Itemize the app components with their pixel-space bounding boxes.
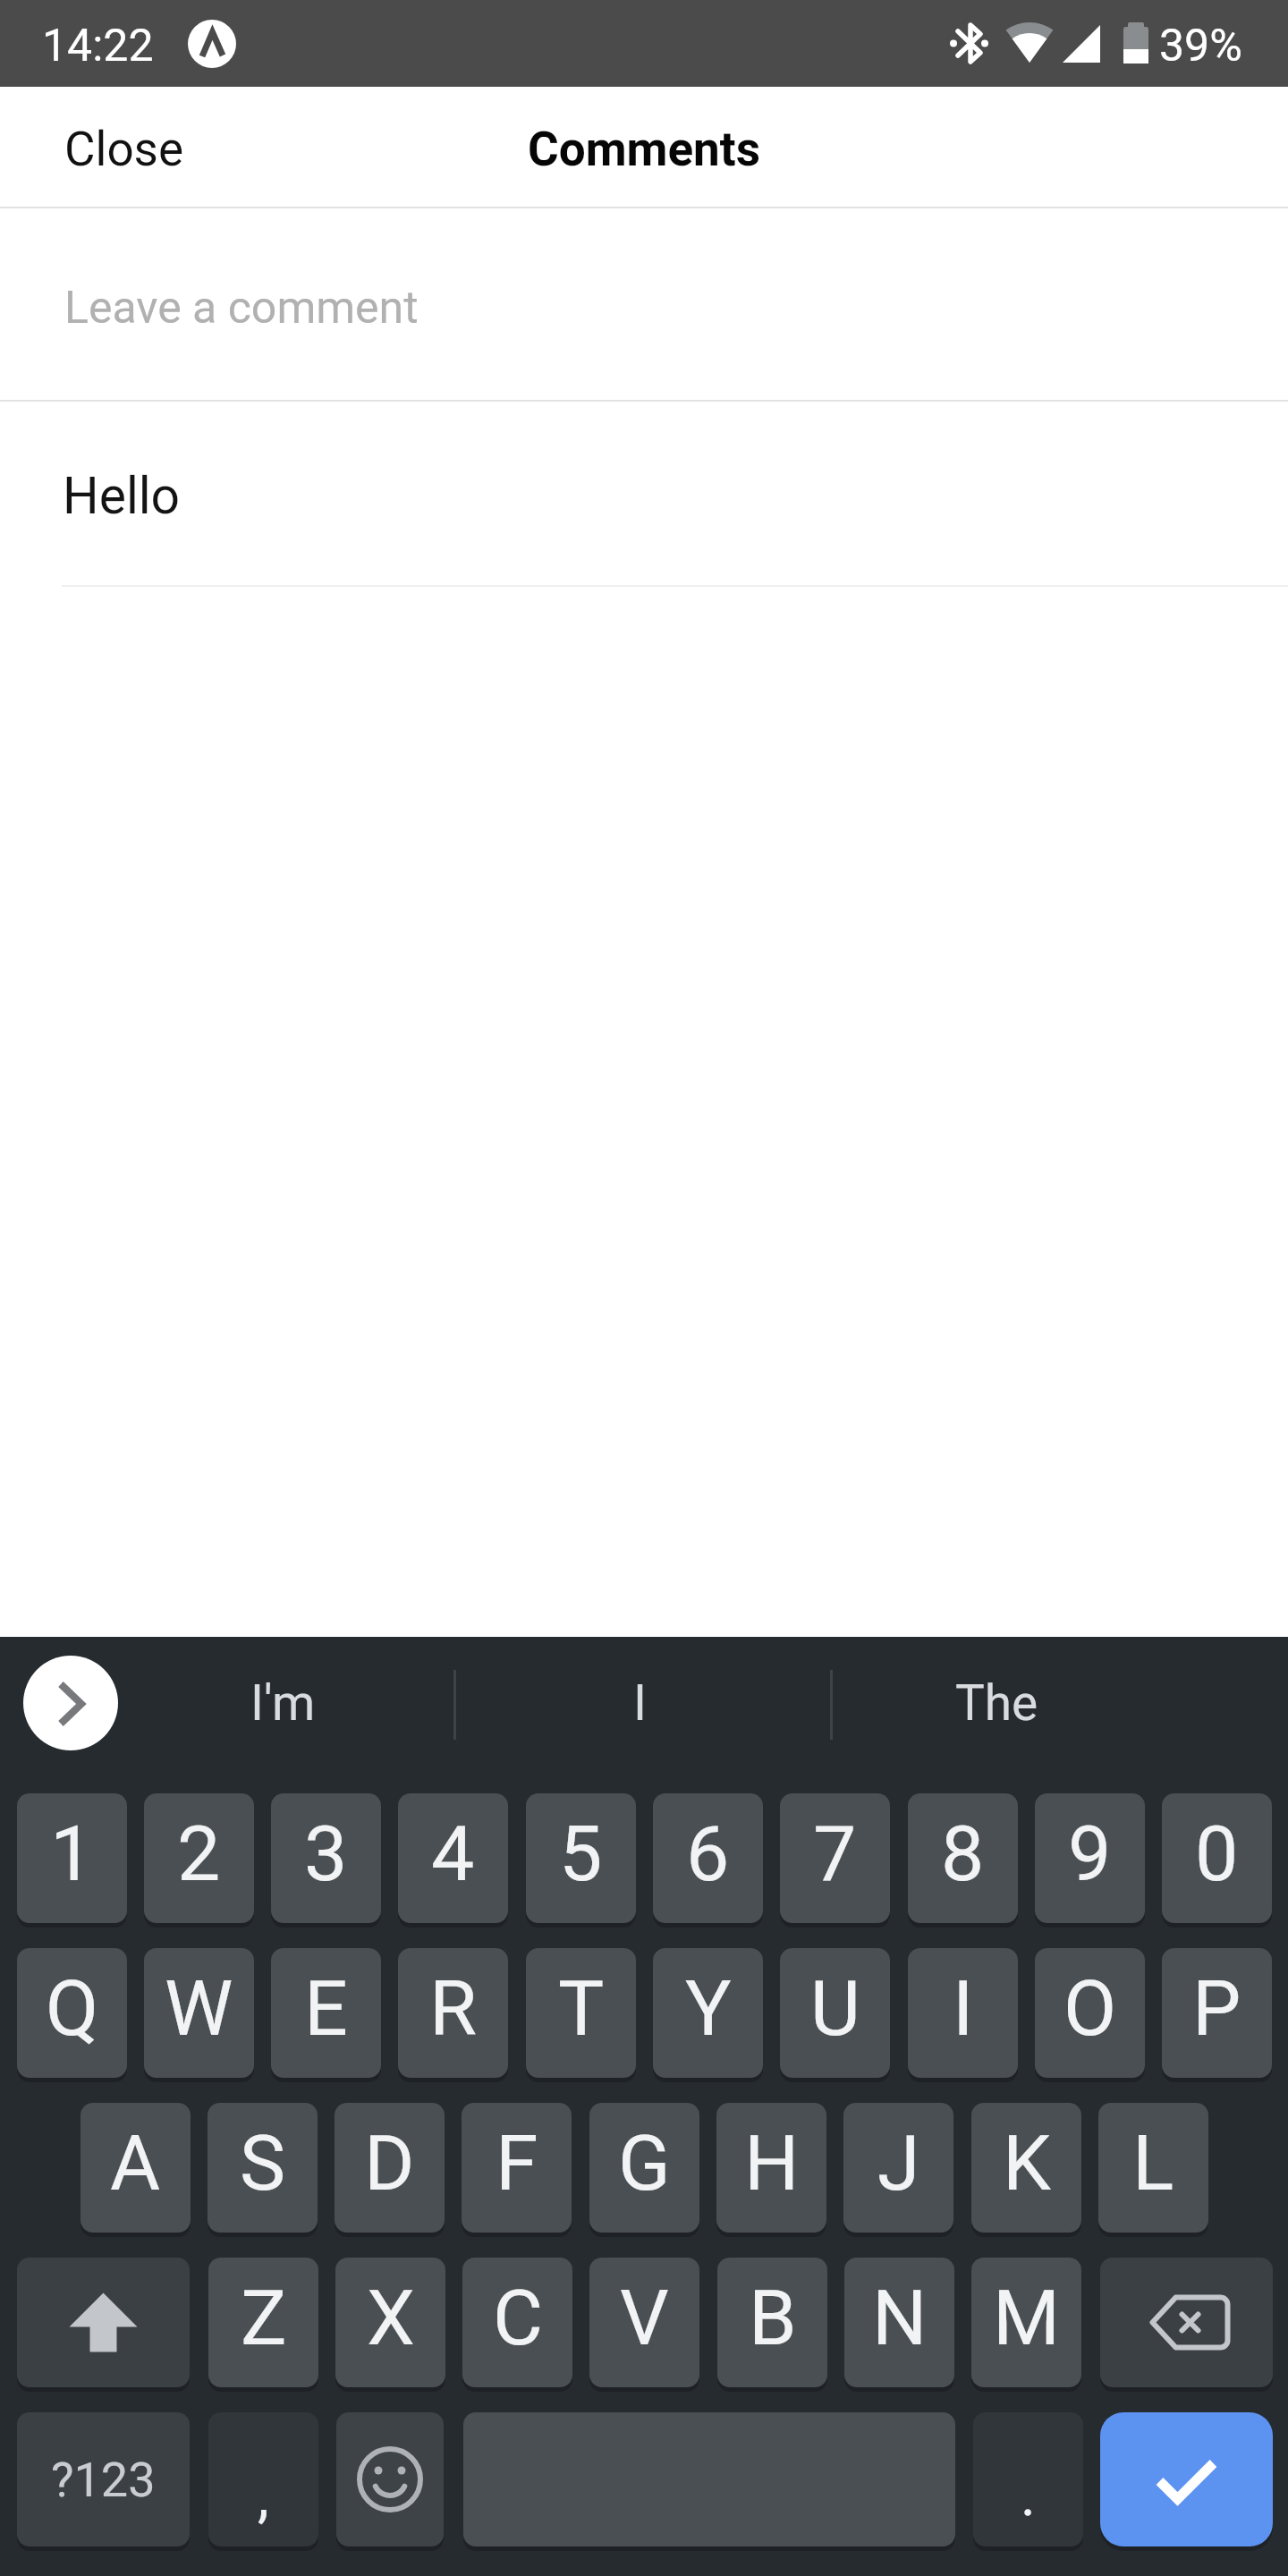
button[interactable]: X <box>335 2258 445 2387</box>
button[interactable]: I <box>908 1948 1018 2078</box>
button[interactable]: Z <box>208 2258 318 2387</box>
button[interactable]: B <box>717 2258 827 2387</box>
button[interactable]: 2 <box>144 1793 254 1923</box>
button[interactable]: Y <box>653 1948 763 2078</box>
button[interactable]: Close <box>0 122 211 177</box>
staticText: Comments <box>528 122 760 177</box>
button[interactable] <box>17 2258 190 2387</box>
staticText: P <box>1192 1963 1241 2054</box>
button[interactable]: . <box>973 2412 1083 2546</box>
staticText: J <box>877 2118 920 2208</box>
staticText: X <box>367 2273 415 2363</box>
button[interactable]: I <box>505 1637 774 1769</box>
staticText: L <box>1132 2118 1174 2208</box>
button[interactable]: P <box>1162 1948 1272 2078</box>
staticText: ?123 <box>51 2452 156 2508</box>
button[interactable]: 4 <box>398 1793 508 1923</box>
staticText: M <box>993 2273 1061 2363</box>
button[interactable]: U <box>780 1948 890 2078</box>
button[interactable]: Q <box>17 1948 127 2078</box>
staticText: I <box>633 1674 647 1732</box>
button[interactable]: F <box>462 2103 572 2233</box>
staticText: 4 <box>431 1809 475 1899</box>
button[interactable] <box>1100 2258 1273 2387</box>
staticText: 9 <box>1068 1809 1112 1899</box>
button[interactable]: 0 <box>1162 1793 1272 1923</box>
staticText: 1 <box>50 1809 94 1899</box>
staticText: C <box>493 2273 543 2363</box>
staticText: 0 <box>1195 1809 1239 1899</box>
button[interactable]: 6 <box>653 1793 763 1923</box>
staticText: Z <box>241 2273 287 2363</box>
staticText: B <box>749 2273 797 2363</box>
button[interactable]: O <box>1035 1948 1145 2078</box>
button[interactable]: 5 <box>526 1793 636 1923</box>
staticText: Y <box>685 1963 732 2054</box>
button[interactable]: H <box>716 2103 826 2233</box>
staticText: H <box>744 2118 800 2208</box>
staticText: 7 <box>813 1809 857 1899</box>
staticText: O <box>1063 1963 1117 2054</box>
button[interactable]: L <box>1098 2103 1208 2233</box>
button[interactable]: C <box>462 2258 572 2387</box>
staticText: E <box>304 1963 348 2054</box>
staticText: The <box>955 1674 1038 1732</box>
button[interactable]: J <box>843 2103 953 2233</box>
staticText: I <box>953 1963 974 2054</box>
button[interactable] <box>336 2412 444 2546</box>
button[interactable]: T <box>526 1948 636 2078</box>
button[interactable]: A <box>80 2103 191 2233</box>
staticText: . <box>1021 2462 1036 2529</box>
button[interactable]: M <box>971 2258 1081 2387</box>
button[interactable]: V <box>589 2258 699 2387</box>
staticText: T <box>558 1963 605 2054</box>
staticText: 14:22 <box>42 20 154 72</box>
staticText: K <box>1003 2118 1051 2208</box>
button[interactable]: N <box>844 2258 954 2387</box>
button[interactable]: G <box>589 2103 699 2233</box>
staticText: A <box>110 2118 161 2208</box>
staticText: R <box>429 1963 477 2054</box>
staticText: 6 <box>686 1809 730 1899</box>
button[interactable]: Leave a comment <box>0 208 1288 400</box>
staticText: , <box>258 2463 269 2530</box>
button[interactable]: S <box>208 2103 318 2233</box>
button[interactable]: ?123 <box>17 2412 190 2546</box>
staticText: 39% <box>1159 20 1242 72</box>
button[interactable]: K <box>971 2103 1081 2233</box>
button[interactable]: W <box>144 1948 254 2078</box>
button[interactable]: 7 <box>780 1793 890 1923</box>
staticText: 2 <box>177 1809 221 1899</box>
button[interactable]: R <box>398 1948 508 2078</box>
staticText: Hello <box>63 466 181 526</box>
button[interactable] <box>1100 2412 1273 2546</box>
button[interactable]: 3 <box>271 1793 381 1923</box>
staticText: Leave a comment <box>64 282 419 335</box>
button[interactable]: E <box>271 1948 381 2078</box>
staticText: F <box>496 2118 538 2208</box>
button[interactable]: Hello <box>0 402 1288 585</box>
staticText: I'm <box>250 1674 316 1732</box>
staticText: Q <box>46 1963 99 2054</box>
staticText: W <box>165 1963 233 2054</box>
staticText: 8 <box>941 1809 985 1899</box>
staticText: 3 <box>304 1809 348 1899</box>
staticText: D <box>364 2118 415 2208</box>
staticText: 5 <box>559 1809 603 1899</box>
button[interactable] <box>463 2412 955 2546</box>
staticText: U <box>810 1963 860 2054</box>
button[interactable]: The <box>862 1637 1131 1769</box>
button[interactable]: D <box>335 2103 445 2233</box>
staticText: N <box>872 2273 928 2363</box>
button[interactable] <box>23 1656 118 1750</box>
staticText: S <box>240 2118 286 2208</box>
button[interactable]: 1 <box>17 1793 127 1923</box>
staticText: G <box>618 2118 671 2208</box>
staticText: Close <box>64 122 184 177</box>
button[interactable]: 8 <box>908 1793 1018 1923</box>
button[interactable]: 9 <box>1035 1793 1145 1923</box>
staticText: V <box>620 2273 669 2363</box>
button[interactable]: I'm <box>148 1637 417 1769</box>
button[interactable]: , <box>208 2412 318 2546</box>
